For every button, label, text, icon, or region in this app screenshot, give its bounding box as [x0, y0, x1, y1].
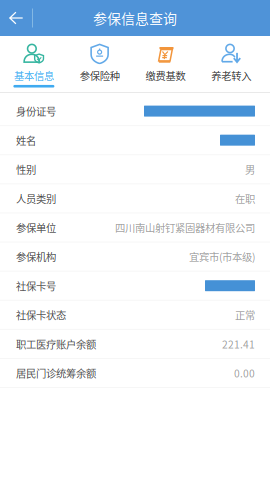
staticText: 缴费基数: [145, 68, 185, 83]
staticText: 社保卡状态: [16, 307, 66, 322]
staticText: 0.00: [234, 365, 255, 380]
staticText: 四川南山射钉紧固器材有限公司: [115, 220, 255, 235]
staticText: 社保卡号: [16, 278, 56, 293]
staticText: 基本信息: [14, 68, 54, 83]
button[interactable]: 基本信息: [1, 36, 67, 92]
staticText: 221.41: [222, 336, 255, 351]
staticText: 姓名: [16, 133, 36, 148]
button[interactable]: 参保险种: [67, 36, 133, 92]
staticText: 人员类别: [16, 191, 56, 206]
staticText: 正常: [235, 307, 255, 322]
staticText: 男: [245, 162, 255, 177]
staticText: 居民门诊统筹余额: [16, 365, 96, 380]
staticText: 在职: [235, 191, 255, 206]
staticText: 参保单位: [16, 220, 56, 235]
staticText: 宜宾市(市本级): [189, 249, 255, 264]
staticText: 职工医疗账户余额: [16, 336, 96, 351]
staticText: 参保机构: [16, 249, 56, 264]
staticText: 性别: [16, 162, 36, 177]
staticText: 参保信息查询: [93, 8, 177, 28]
staticText: 养老转入: [211, 68, 251, 83]
button[interactable]: 养老转入: [198, 36, 264, 92]
button[interactable]: Back: [0, 0, 32, 36]
button[interactable]: 缴费基数: [132, 36, 198, 92]
staticText: 身份证号: [16, 104, 56, 119]
staticText: 参保险种: [80, 68, 120, 83]
